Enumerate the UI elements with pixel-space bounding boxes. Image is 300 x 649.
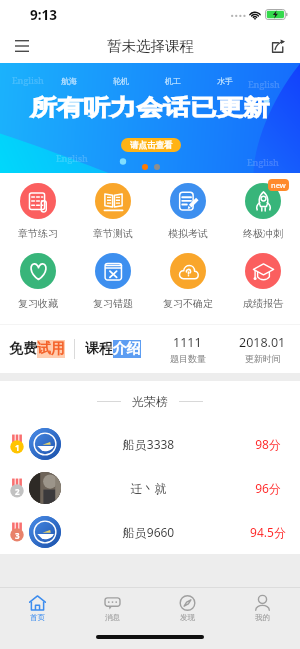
button[interactable]: Share [262,31,292,61]
staticText: 1 [15,442,20,453]
staticText: new [271,180,286,190]
staticText: 1111 [173,334,202,351]
staticText: 船员3338 [61,436,236,452]
staticText: 免费 [9,340,37,358]
button[interactable]: 模拟考试 [150,183,225,240]
staticText: 我的 [255,613,270,622]
staticText: 光荣榜 [132,394,168,409]
staticText: 介绍 [113,340,141,358]
staticText: 复习不确定 [163,297,213,310]
staticText: English [248,78,280,90]
button[interactable]: 我的 [225,588,300,628]
staticText: 成绩报告 [243,297,283,310]
button[interactable]: 消息 [75,588,150,628]
button[interactable]: 3 [0,510,300,554]
staticText: 首页 [30,613,45,622]
staticText: 终极冲刺 [243,227,283,240]
staticText: 迁丶就 [61,481,236,496]
staticText: 机工 [165,76,181,86]
staticText: English [247,156,279,168]
staticText: 9:13 [30,6,57,24]
button[interactable]: 首页 [0,588,75,628]
staticText: 更新时间 [245,353,281,364]
staticText: 水手 [217,76,233,86]
staticText: 所有听力会话已更新 [30,94,270,122]
staticText: 章节测试 [93,227,133,240]
button[interactable]: 复习不确定 [150,253,225,310]
button[interactable]: 免费 [0,325,74,373]
button[interactable]: English [0,63,300,173]
button[interactable]: 发现 [150,588,225,628]
staticText: 试用 [37,340,65,358]
staticText: 96分 [236,480,300,496]
button[interactable]: new [225,183,300,240]
button[interactable]: 成绩报告 [225,253,300,310]
button[interactable]: 请点击查看 [121,138,181,152]
staticText: English [12,74,44,86]
staticText: 复习收藏 [18,297,58,310]
staticText: 航海 [61,76,77,86]
staticText: 题目数量 [170,353,206,364]
button[interactable]: 课程 [75,325,150,373]
staticText: 发现 [180,613,195,622]
button[interactable]: 章节练习 [0,183,75,240]
staticText: English [56,152,88,164]
staticText: 2018.01 [239,334,286,351]
staticText: 复习错题 [93,297,133,310]
staticText: 94.5分 [236,524,300,540]
button[interactable]: 复习收藏 [0,253,75,310]
staticText: 模拟考试 [168,227,208,240]
staticText: 98分 [236,436,300,452]
staticText: 3 [15,530,20,541]
button[interactable]: Menu [6,30,38,62]
staticText: 轮机 [113,76,129,86]
staticText: 消息 [105,613,120,622]
staticText: 暂未选择课程 [107,37,194,55]
staticText: 船员9660 [61,524,236,540]
staticText: 章节练习 [18,227,58,240]
button[interactable]: 章节测试 [75,183,150,240]
button[interactable]: 2 [0,466,300,510]
button[interactable]: 1 [0,422,300,466]
staticText: 课程 [85,340,113,358]
staticText: 2 [15,486,20,497]
button[interactable]: 复习错题 [75,253,150,310]
staticText: 请点击查看 [130,140,173,151]
